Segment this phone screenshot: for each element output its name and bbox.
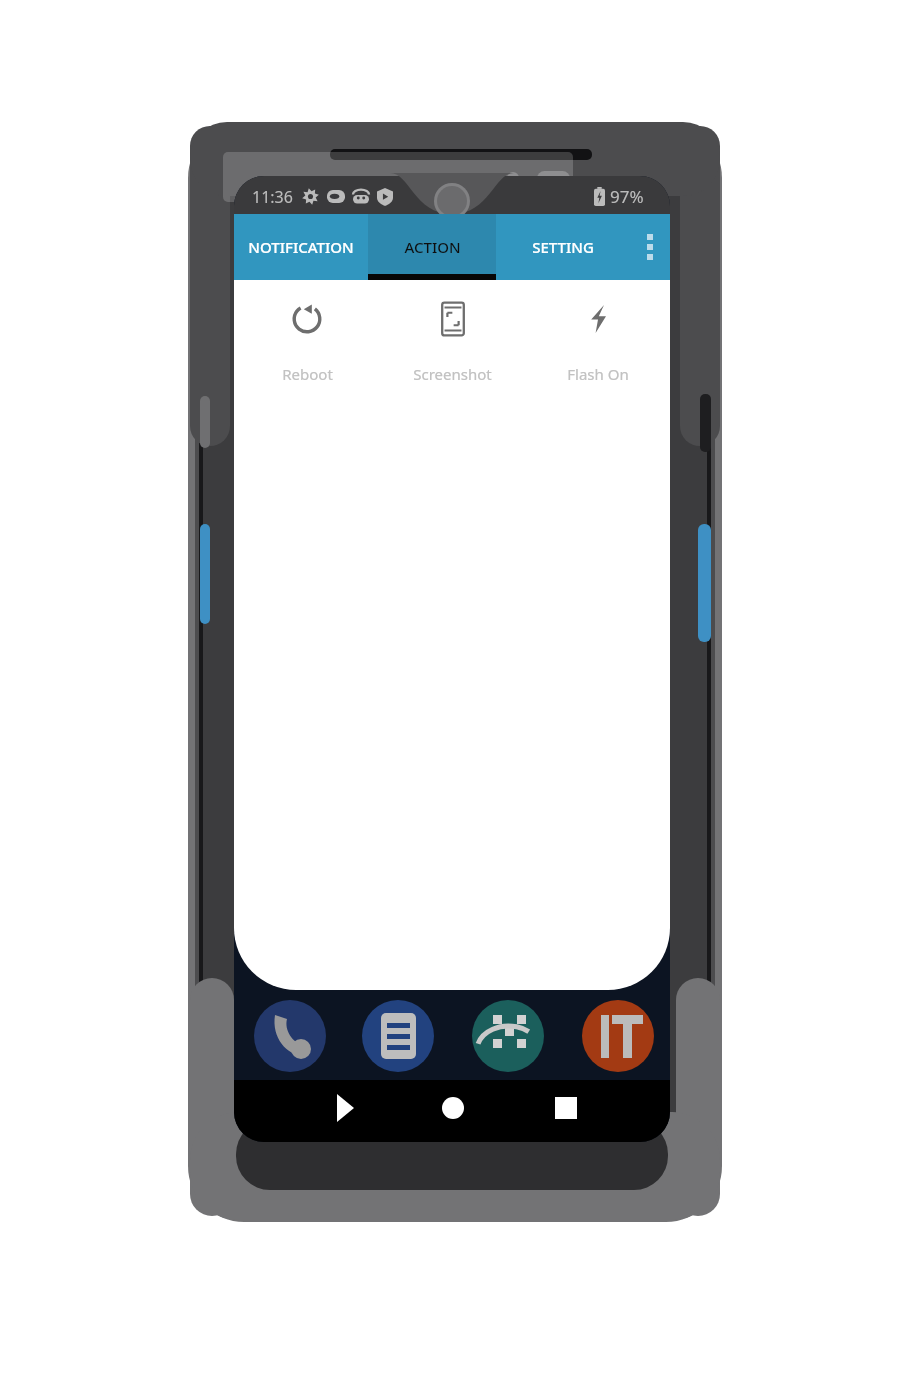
button[interactable]: SETTING	[496, 214, 630, 280]
staticText: 11:36	[252, 186, 293, 208]
staticText: ACTION	[404, 237, 461, 257]
button[interactable]: NOTIFICATION	[234, 214, 368, 280]
staticText: Reboot	[282, 364, 333, 384]
button[interactable]: Flash On	[525, 296, 670, 402]
button[interactable]: Screenshot	[380, 296, 525, 402]
staticText: Screenshot	[413, 364, 492, 384]
button[interactable]: Reboot	[234, 296, 380, 402]
button[interactable]: ACTION	[368, 214, 496, 280]
button[interactable]: More options	[630, 214, 670, 280]
staticText: NOTIFICATION	[248, 237, 354, 257]
staticText: Flash On	[567, 364, 629, 384]
staticText: 97%	[610, 185, 644, 208]
staticText: SETTING	[532, 237, 594, 257]
